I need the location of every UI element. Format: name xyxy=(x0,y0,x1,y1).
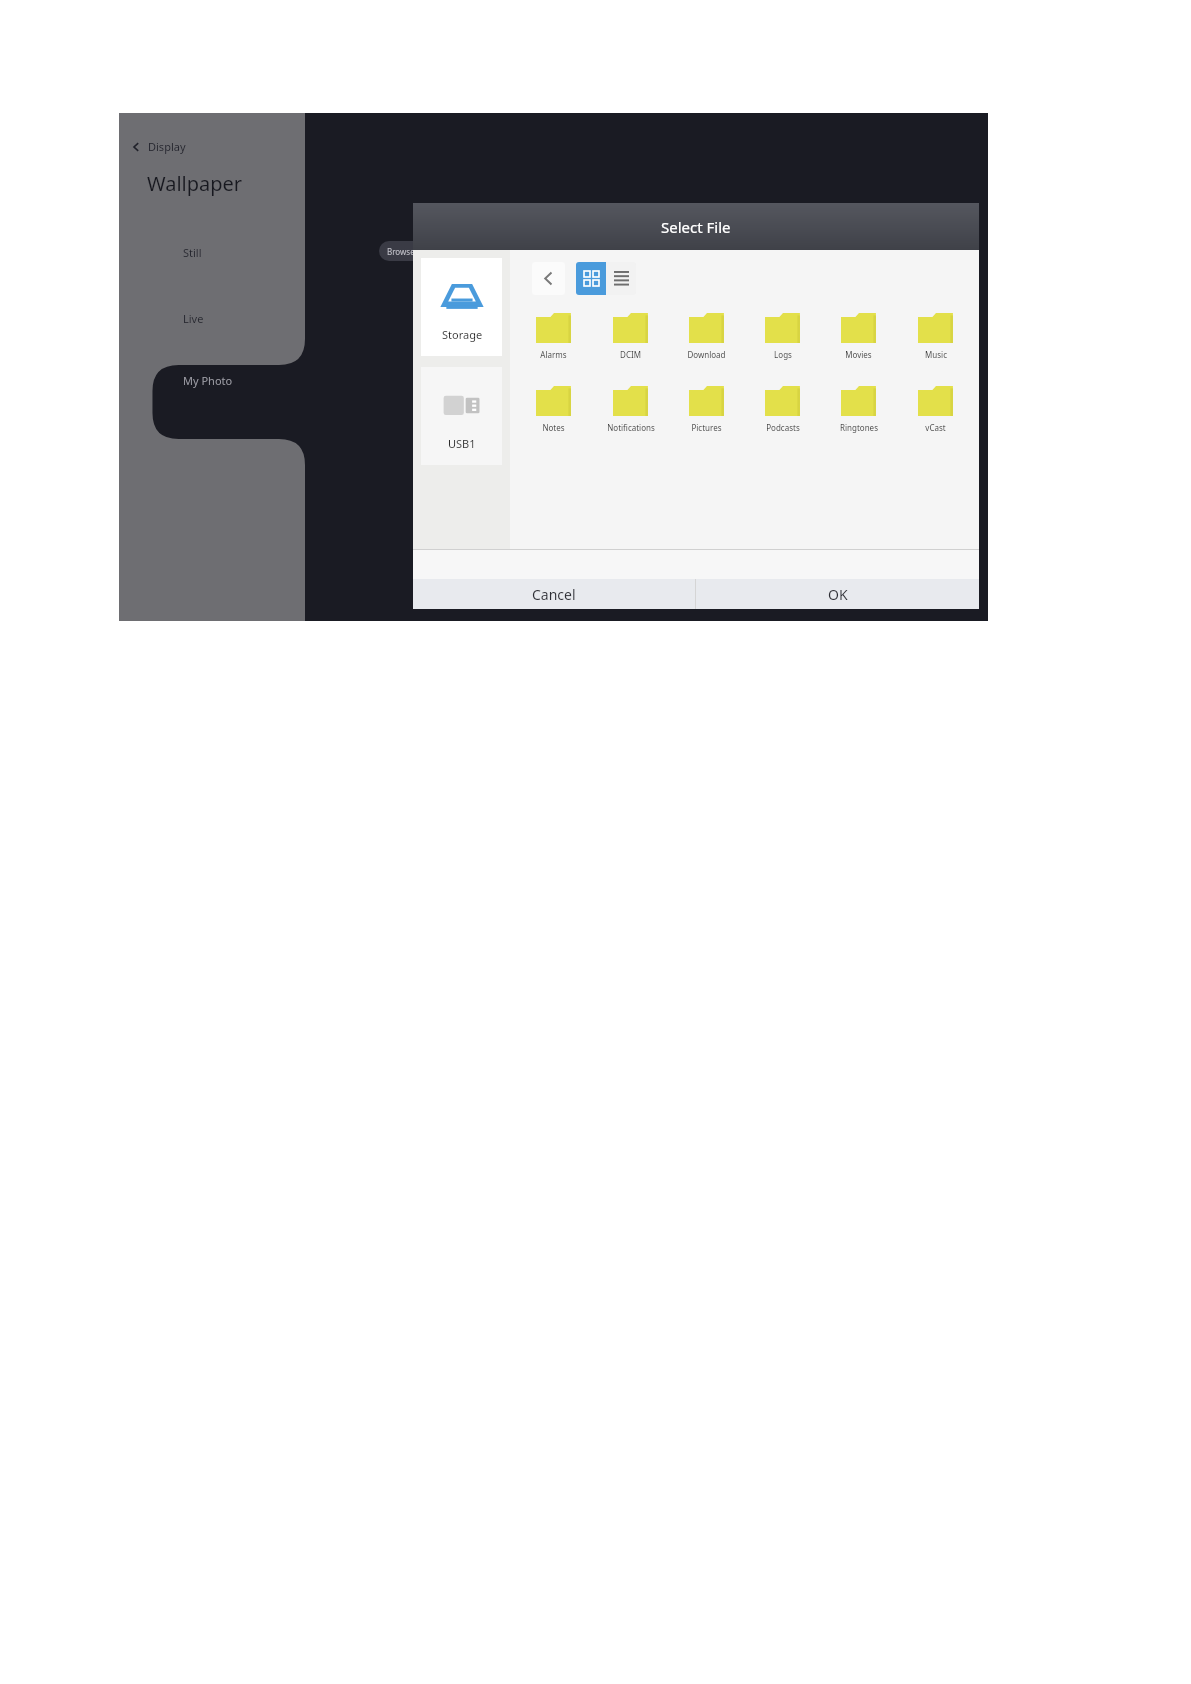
staticText: Music xyxy=(925,349,947,360)
staticText: Select File xyxy=(661,217,731,237)
staticText: Logs xyxy=(774,349,792,360)
button[interactable]: Notes xyxy=(517,384,590,435)
staticText: Alarms xyxy=(540,349,567,360)
staticText: Ringtones xyxy=(840,422,878,433)
button[interactable]: Back xyxy=(119,135,198,158)
staticText: Notifications xyxy=(607,422,655,433)
staticText: vCast xyxy=(925,422,946,433)
button[interactable]: Browse xyxy=(379,241,449,261)
staticText: Pictures xyxy=(691,422,722,433)
button[interactable]: USB1 xyxy=(421,367,502,465)
button[interactable]: OK xyxy=(696,579,979,609)
staticText: My Photo xyxy=(183,373,233,388)
button[interactable]: Storage xyxy=(421,258,502,356)
staticText: Still xyxy=(183,245,202,260)
button[interactable]: Grid view xyxy=(576,262,606,295)
staticText: Wallpaper xyxy=(147,170,243,197)
button[interactable]: vCast xyxy=(899,384,972,435)
staticText: Podcasts xyxy=(766,422,800,433)
button[interactable]: DCIM xyxy=(594,311,667,362)
button[interactable]: Back xyxy=(532,262,565,295)
staticText: Download xyxy=(687,349,726,360)
button[interactable]: My Photo xyxy=(119,367,305,393)
button[interactable]: Music xyxy=(899,311,972,362)
button[interactable]: Ringtones xyxy=(822,384,895,435)
staticText: DCIM xyxy=(620,349,641,360)
button[interactable]: Logs xyxy=(746,311,819,362)
button[interactable]: Cancel xyxy=(413,579,695,609)
button[interactable]: Podcasts xyxy=(746,384,819,435)
button[interactable]: Live xyxy=(119,305,305,331)
button[interactable]: Movies xyxy=(822,311,895,362)
other: Back xyxy=(131,142,141,152)
staticText: Movies xyxy=(845,349,872,360)
button[interactable]: Download xyxy=(670,311,743,362)
staticText: Live xyxy=(183,311,204,326)
button[interactable]: Pictures xyxy=(670,384,743,435)
button[interactable]: Alarms xyxy=(517,311,590,362)
staticText: Cancel xyxy=(532,585,576,604)
staticText: Notes xyxy=(542,422,565,433)
button[interactable]: List view xyxy=(606,262,636,295)
staticText: Storage xyxy=(442,327,483,342)
staticText: OK xyxy=(828,585,848,604)
button[interactable]: Notifications xyxy=(594,384,667,435)
button[interactable]: Still xyxy=(119,239,305,265)
staticText: Browse xyxy=(387,246,415,257)
staticText: USB1 xyxy=(448,436,476,451)
staticText: Display xyxy=(148,139,186,154)
